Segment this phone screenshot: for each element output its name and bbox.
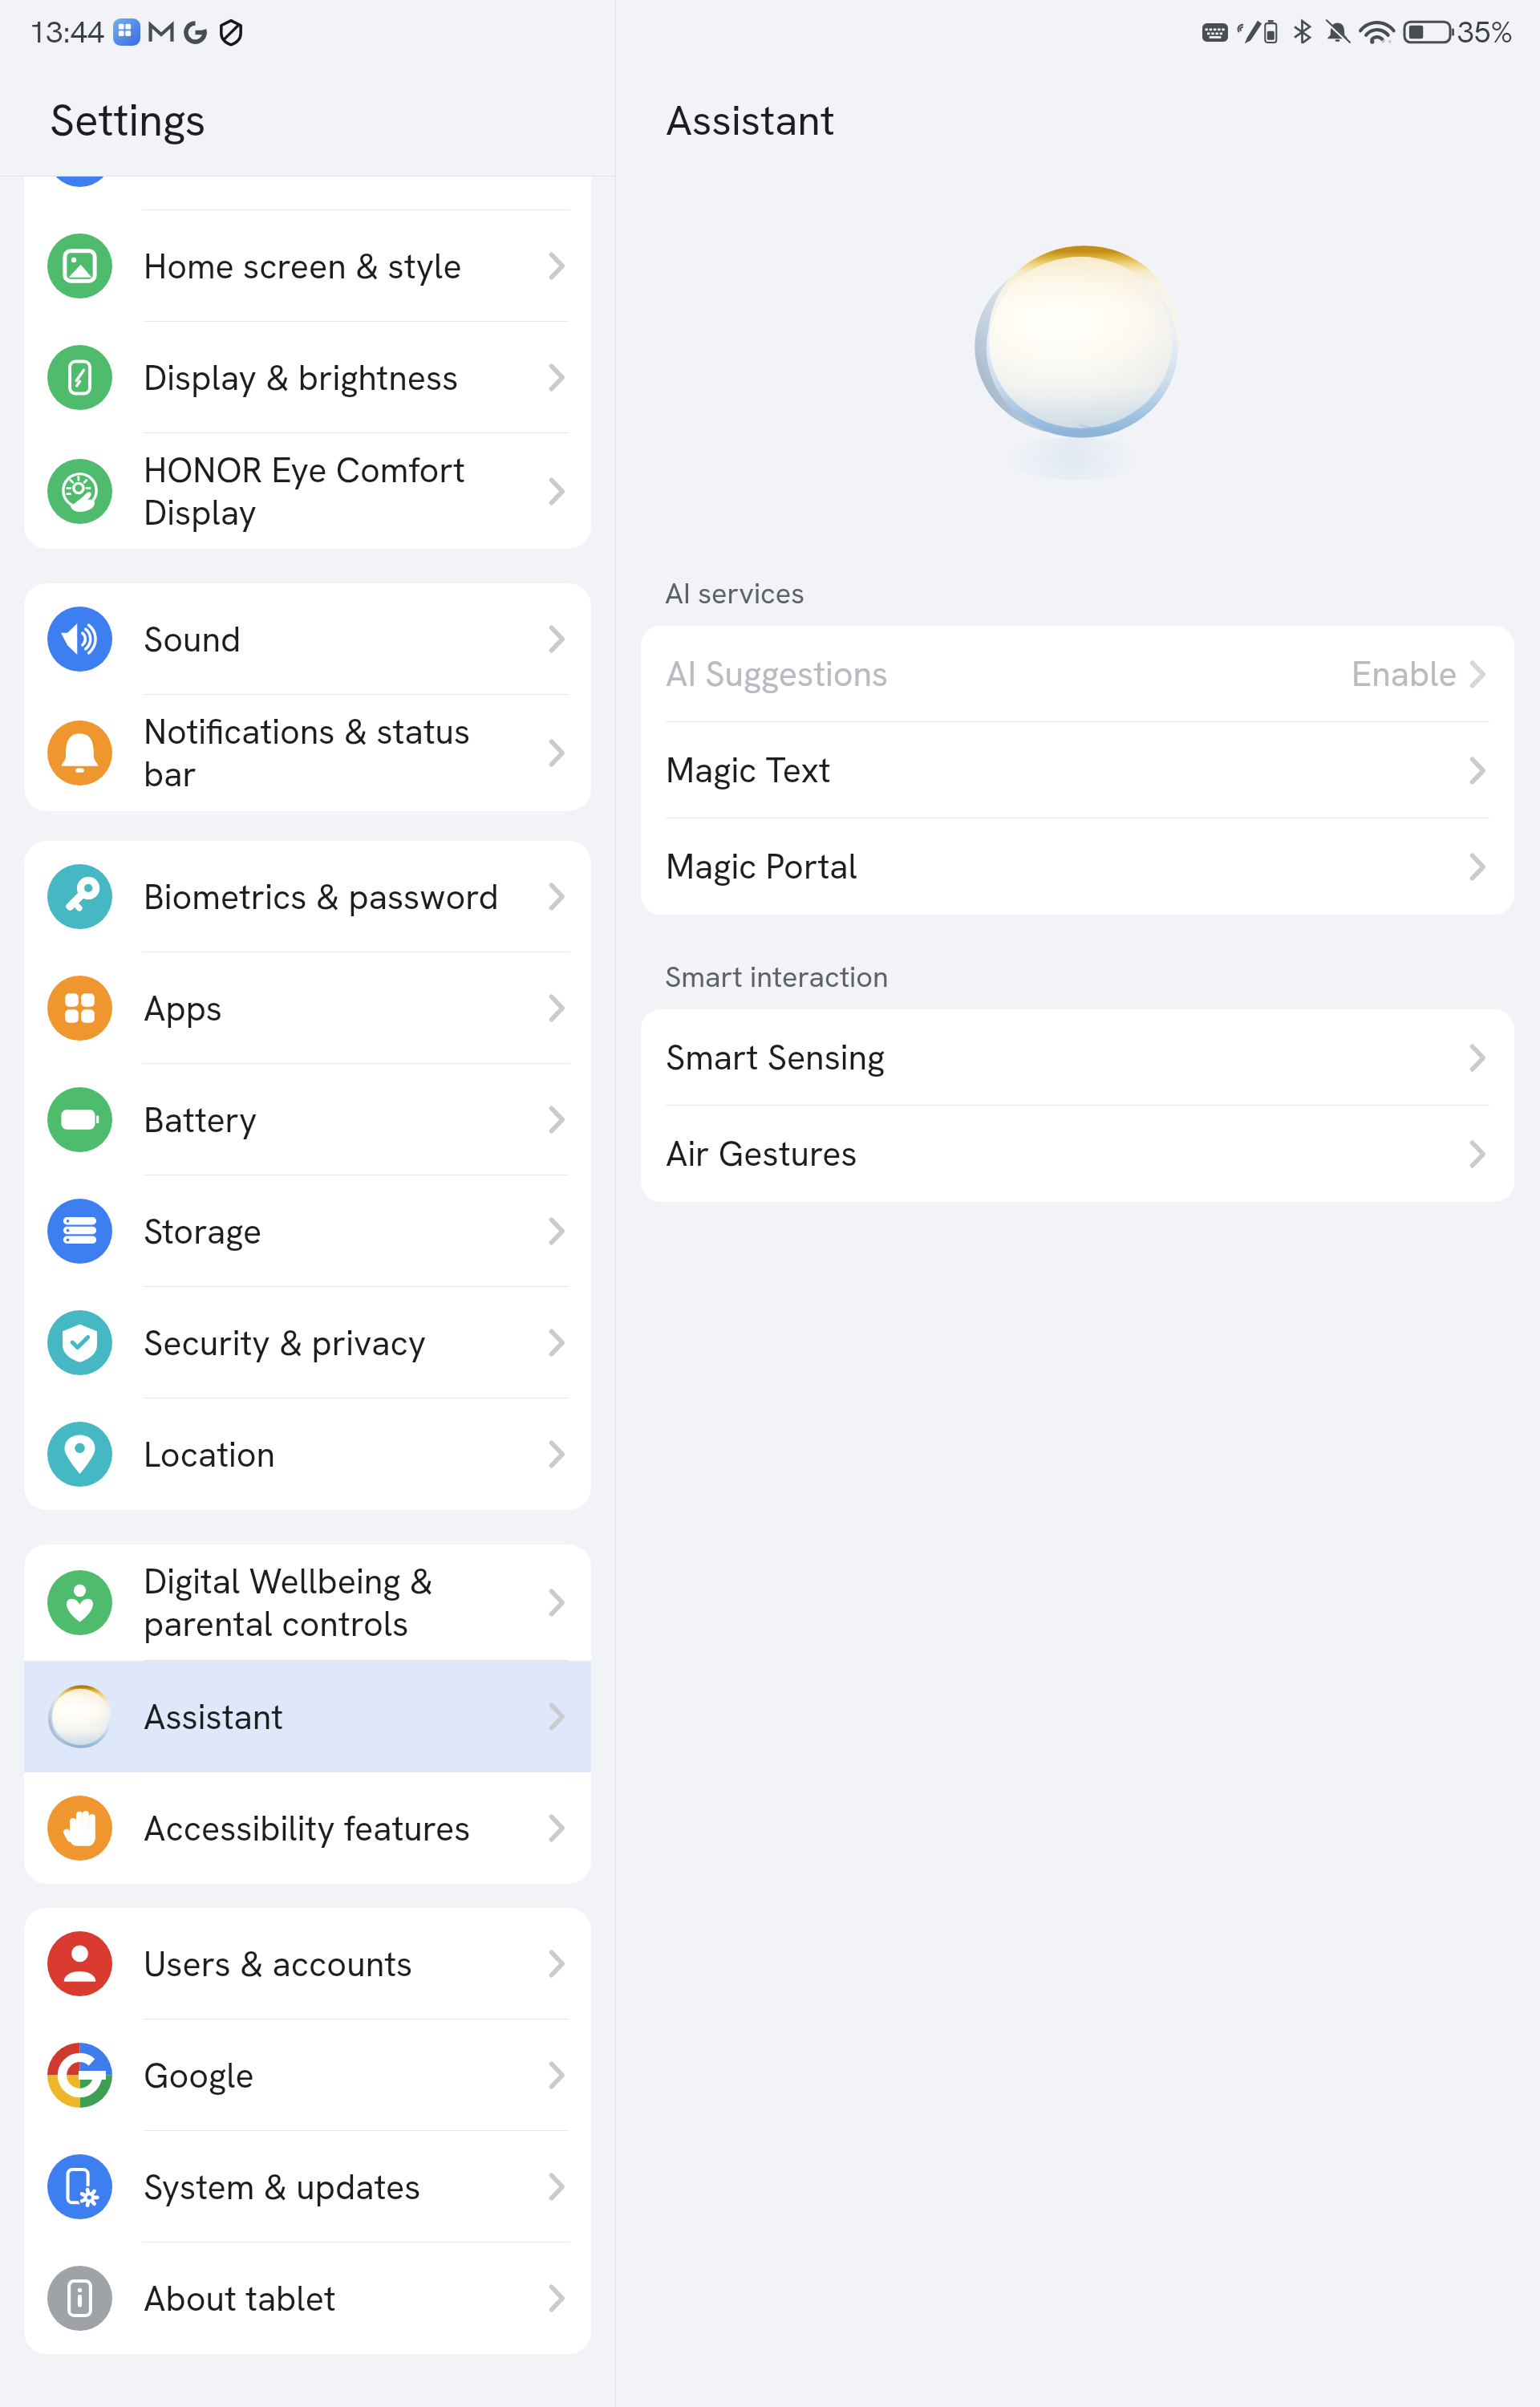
button[interactable]: Accessibility features (24, 1772, 591, 1884)
staticText: Assistant (144, 1695, 522, 1739)
staticText: Settings (50, 91, 206, 149)
staticText: Google (144, 2053, 522, 2098)
staticText: About tablet (144, 2276, 522, 2321)
staticText: 13:44 (29, 12, 105, 52)
staticText: Smart interaction (665, 958, 889, 996)
staticText: Battery (144, 1098, 522, 1143)
staticText: Magic Text (666, 748, 831, 793)
staticText: Sound (144, 617, 522, 662)
staticText: 35% (1457, 13, 1514, 51)
button[interactable]: Magic Text (641, 722, 1514, 818)
staticText: Users & accounts (144, 1942, 522, 1987)
button[interactable]: Home screen & style (24, 210, 591, 322)
staticText: Digital Wellbeing & parental controls (144, 1559, 522, 1646)
button[interactable]: Display & brightness (24, 322, 591, 433)
staticText: Apps (144, 986, 522, 1031)
button[interactable]: Google (24, 2019, 591, 2131)
staticText: Assistant (666, 93, 835, 148)
button[interactable]: System & updates (24, 2131, 591, 2243)
button[interactable]: Magic Portal (641, 818, 1514, 915)
staticText: HONOR Eye Comfort Display (144, 448, 522, 535)
staticText: Air Gestures (666, 1131, 857, 1176)
button[interactable]: Sound (24, 583, 591, 695)
staticText: Magic Portal (666, 844, 857, 889)
button[interactable]: Assistant (24, 1661, 591, 1772)
staticText: AI services (665, 574, 805, 612)
staticText: Location (144, 1432, 522, 1477)
staticText: Notifications & status bar (144, 709, 522, 797)
staticText: Display & brightness (144, 355, 522, 400)
button[interactable]: Biometrics & password (24, 841, 591, 952)
button[interactable]: AI Suggestions (641, 626, 1514, 722)
staticText: Smart Sensing (666, 1035, 885, 1080)
button[interactable]: Battery (24, 1064, 591, 1175)
button[interactable]: Notifications & status bar (24, 695, 591, 811)
button[interactable]: Security & privacy (24, 1287, 591, 1398)
button[interactable]: Apps (24, 952, 591, 1064)
button[interactable]: Digital Wellbeing & parental controls (24, 1544, 591, 1661)
staticText: Enable (1352, 651, 1457, 696)
button[interactable]: Air Gestures (641, 1106, 1514, 1202)
button[interactable] (24, 177, 591, 210)
staticText: Security & privacy (144, 1321, 522, 1366)
staticText: Accessibility features (144, 1806, 522, 1851)
button[interactable]: Location (24, 1398, 591, 1510)
button[interactable]: Storage (24, 1175, 591, 1287)
staticText: System & updates (144, 2165, 522, 2210)
button[interactable]: Smart Sensing (641, 1009, 1514, 1106)
staticText: Home screen & style (144, 244, 522, 289)
button[interactable]: HONOR Eye Comfort Display (24, 433, 591, 549)
staticText: Storage (144, 1209, 522, 1254)
button[interactable]: About tablet (24, 2243, 591, 2354)
button[interactable]: Users & accounts (24, 1908, 591, 2019)
staticText: AI Suggestions (666, 651, 889, 696)
staticText: Biometrics & password (144, 875, 522, 919)
